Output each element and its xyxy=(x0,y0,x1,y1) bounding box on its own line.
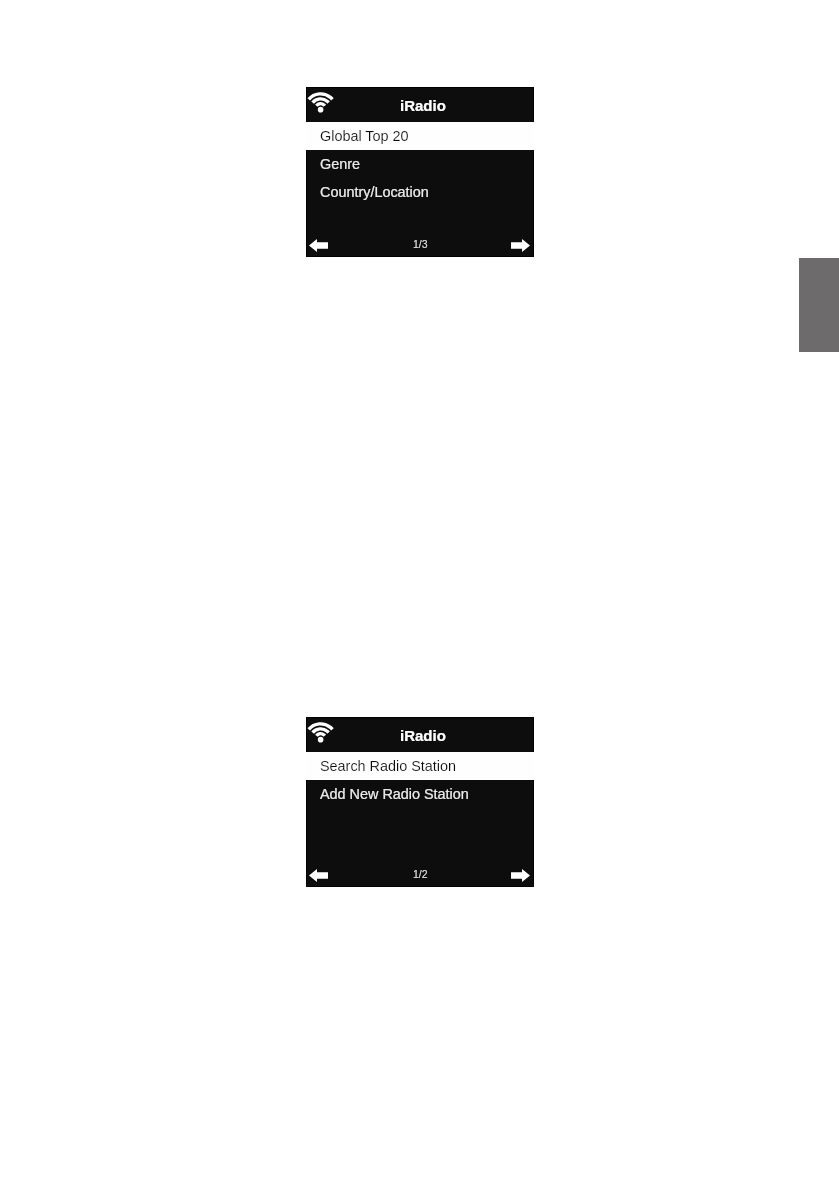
button[interactable]: Search Radio Station xyxy=(306,752,534,780)
button[interactable]: Next page xyxy=(507,863,534,887)
staticText: Global Top 20 xyxy=(320,128,409,144)
staticText: iRadio xyxy=(400,97,446,114)
button[interactable]: Previous page xyxy=(306,233,333,257)
button[interactable]: Country/Location xyxy=(307,178,533,206)
button[interactable]: Add New Radio Station xyxy=(307,780,533,808)
staticText: 1/3 xyxy=(413,238,428,250)
other: Wi-Fi signal xyxy=(308,92,333,112)
button[interactable]: Global Top 20 xyxy=(306,122,534,150)
staticText: iRadio xyxy=(400,727,446,744)
other: Wi-Fi signal xyxy=(308,722,333,742)
button[interactable]: Previous page xyxy=(306,863,333,887)
button[interactable]: Genre xyxy=(307,150,533,178)
staticText: Genre xyxy=(320,156,360,172)
staticText: Search Radio Station xyxy=(320,758,456,774)
staticText: Country/Location xyxy=(320,184,429,200)
staticText: Add New Radio Station xyxy=(320,786,469,802)
button[interactable]: Next page xyxy=(507,233,534,257)
staticText: 1/2 xyxy=(413,868,428,880)
